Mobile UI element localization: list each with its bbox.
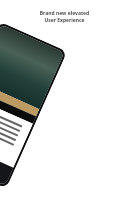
staticText: Brand new elevated User Experience <box>30 10 99 24</box>
